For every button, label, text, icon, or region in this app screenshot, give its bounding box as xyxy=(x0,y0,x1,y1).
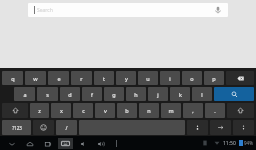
button[interactable]: c xyxy=(73,103,93,118)
button[interactable]: y xyxy=(116,71,136,85)
button[interactable]: b xyxy=(117,103,137,118)
button[interactable]: t xyxy=(94,71,114,85)
staticText: i xyxy=(169,75,171,82)
staticText: f xyxy=(91,91,93,98)
staticText: l xyxy=(201,91,203,98)
staticText: v xyxy=(104,107,107,114)
staticText: g xyxy=(112,91,116,98)
button[interactable]: x xyxy=(51,103,71,118)
button[interactable]: h xyxy=(126,87,146,101)
button[interactable]: z xyxy=(30,103,49,118)
button[interactable]: f xyxy=(82,87,102,101)
staticText: ?123 xyxy=(12,125,22,131)
button[interactable]: r xyxy=(71,71,92,85)
staticText: / xyxy=(65,124,68,131)
button[interactable]: k xyxy=(170,87,190,101)
staticText: d xyxy=(68,91,72,98)
staticText: x xyxy=(60,107,63,114)
staticText: Search xyxy=(37,7,53,14)
button[interactable]: a xyxy=(14,87,35,101)
staticText: m xyxy=(168,107,174,114)
staticText: r xyxy=(80,75,83,82)
button[interactable]: m xyxy=(161,103,181,118)
staticText: t xyxy=(103,75,105,82)
button[interactable]: Search xyxy=(28,3,228,17)
staticText: z xyxy=(38,107,41,114)
button[interactable]: Recent apps xyxy=(42,138,53,149)
staticText: y xyxy=(125,75,128,82)
button[interactable]: u xyxy=(138,71,158,85)
button[interactable]: Volume down xyxy=(78,138,89,149)
button[interactable]: Search xyxy=(214,87,254,101)
staticText: n xyxy=(147,107,151,114)
staticText: 11:50 xyxy=(223,140,236,147)
staticText: . xyxy=(214,107,216,114)
button[interactable]: , xyxy=(183,103,203,118)
button[interactable]: w xyxy=(25,71,46,85)
staticText: k xyxy=(179,91,182,98)
staticText: q xyxy=(11,75,15,82)
button[interactable]: Hide keyboard xyxy=(58,138,73,149)
button[interactable]: s xyxy=(37,87,58,101)
button[interactable]: Arrow xyxy=(210,120,231,135)
button[interactable]: . xyxy=(205,103,225,118)
staticText: s xyxy=(46,91,49,98)
button[interactable]: More xyxy=(233,120,254,135)
button[interactable]: Back xyxy=(6,138,17,149)
button[interactable]: g xyxy=(104,87,124,101)
button[interactable]: Shift xyxy=(2,103,28,118)
staticText: e xyxy=(57,75,61,82)
button[interactable]: Voice search xyxy=(213,5,223,15)
button[interactable]: v xyxy=(95,103,115,118)
button[interactable]: Emoji xyxy=(33,120,54,135)
staticText: j xyxy=(157,91,159,98)
button[interactable]: Shift xyxy=(227,103,254,118)
button[interactable]: l xyxy=(192,87,212,101)
staticText: o xyxy=(190,75,194,82)
button[interactable]: More options xyxy=(112,139,120,147)
staticText: h xyxy=(134,91,138,98)
button[interactable]: j xyxy=(148,87,168,101)
staticText: w xyxy=(33,75,38,82)
button[interactable]: Settings xyxy=(187,120,208,135)
button[interactable]: / xyxy=(56,120,77,135)
staticText: 94% xyxy=(244,140,253,146)
staticText: , xyxy=(192,107,194,114)
button[interactable]: p xyxy=(204,71,224,85)
button[interactable]: n xyxy=(139,103,159,118)
staticText: u xyxy=(146,75,150,82)
button[interactable]: e xyxy=(48,71,69,85)
button[interactable]: o xyxy=(182,71,202,85)
staticText: p xyxy=(212,75,216,82)
button[interactable]: ?123 xyxy=(2,120,31,135)
button[interactable]: Volume up xyxy=(95,138,106,149)
button[interactable]: Home xyxy=(24,138,35,149)
staticText: a xyxy=(23,91,27,98)
button[interactable]: Backspace xyxy=(226,71,254,85)
staticText: b xyxy=(125,107,129,114)
staticText: c xyxy=(82,107,85,114)
button[interactable]: d xyxy=(60,87,80,101)
button[interactable]: q xyxy=(2,71,23,85)
button[interactable]: i xyxy=(160,71,180,85)
